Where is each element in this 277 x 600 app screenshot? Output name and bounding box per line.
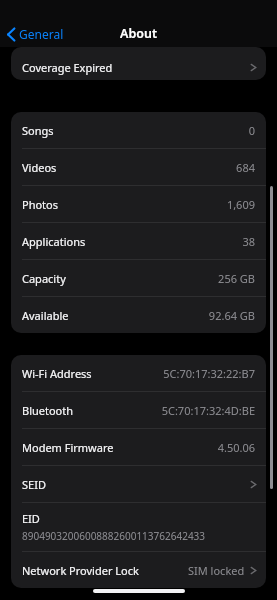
button[interactable]: Back to General xyxy=(0,21,70,47)
staticText: 1,609 xyxy=(226,197,255,212)
button[interactable]: Wi-Fi Address xyxy=(11,355,266,391)
staticText: About xyxy=(120,25,157,42)
button[interactable]: Available xyxy=(11,297,266,333)
button[interactable]: SEID xyxy=(11,466,266,502)
button[interactable]: Coverage Expired xyxy=(11,54,266,80)
button[interactable]: Network Provider Lock xyxy=(11,552,266,588)
staticText: 38 xyxy=(242,234,255,249)
staticText: Coverage Expired xyxy=(22,60,113,75)
staticText: SEID xyxy=(22,477,46,492)
staticText: 5C:70:17:32:22:B7 xyxy=(163,366,255,381)
button[interactable]: Photos xyxy=(11,186,266,222)
staticText: 684 xyxy=(236,160,255,175)
staticText: Capacity xyxy=(22,271,66,286)
other: Back to General xyxy=(7,27,16,42)
staticText: Videos xyxy=(22,160,57,175)
staticText: General xyxy=(19,26,64,42)
staticText: EID xyxy=(22,511,40,526)
staticText: Modem Firmware xyxy=(22,440,114,455)
button[interactable]: Songs xyxy=(11,112,266,148)
button[interactable]: Bluetooth xyxy=(11,392,266,428)
button[interactable]: Applications xyxy=(11,223,266,259)
staticText: SIM locked xyxy=(188,563,245,578)
staticText: Available xyxy=(22,308,69,323)
staticText: Applications xyxy=(22,234,86,249)
staticText: Photos xyxy=(22,197,59,212)
staticText: 256 GB xyxy=(218,271,255,286)
staticText: 0 xyxy=(248,123,255,138)
button[interactable]: Videos xyxy=(11,149,266,185)
staticText: 92.64 GB xyxy=(208,308,255,323)
button[interactable]: EID xyxy=(11,503,266,551)
staticText: Wi-Fi Address xyxy=(22,366,92,381)
staticText: 89049032006008882600113762642433 xyxy=(22,529,206,543)
button[interactable]: Modem Firmware xyxy=(11,429,266,465)
staticText: Songs xyxy=(22,123,54,138)
staticText: 4.50.06 xyxy=(217,440,255,455)
button[interactable]: Capacity xyxy=(11,260,266,296)
staticText: 5C:70:17:32:4D:BE xyxy=(161,403,255,418)
staticText: Bluetooth xyxy=(22,403,74,418)
staticText: Network Provider Lock xyxy=(22,563,139,578)
